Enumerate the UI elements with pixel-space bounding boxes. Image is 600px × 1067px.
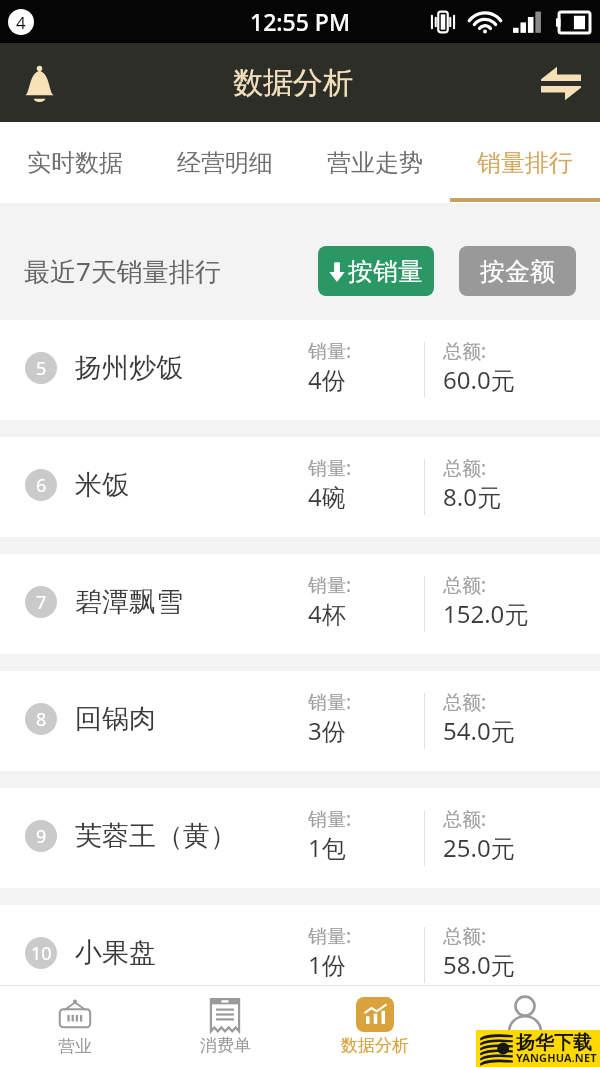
button[interactable]: 消费单	[150, 986, 300, 1067]
button[interactable]: 6	[0, 437, 600, 537]
button[interactable]: 销量排行	[450, 122, 600, 203]
button[interactable]: 实时数据	[0, 122, 150, 203]
staticText: 6	[36, 473, 47, 498]
staticText: 扬华下载	[516, 1031, 592, 1055]
staticText: 1份	[308, 948, 346, 981]
button[interactable]: 按销量	[318, 246, 434, 296]
staticText: 数据分析	[341, 1035, 409, 1056]
staticText: 4碗	[308, 480, 346, 513]
button[interactable]: 7	[0, 554, 600, 654]
staticText: 8	[36, 707, 47, 732]
staticText: 9	[36, 824, 47, 849]
staticText: 总额:	[443, 689, 487, 715]
staticText: 4份	[308, 363, 346, 396]
staticText: 按金额	[480, 256, 555, 287]
button[interactable]: 营业走势	[300, 122, 450, 203]
staticText: 销量:	[308, 338, 352, 364]
staticText: 经营明细	[177, 148, 273, 178]
staticText: 25.0元	[443, 831, 515, 864]
button[interactable]: 8	[0, 671, 600, 771]
staticText: 54.0元	[443, 714, 515, 747]
staticText: 总额:	[443, 455, 487, 481]
staticText: 销量:	[308, 806, 352, 832]
staticText: 58.0元	[443, 948, 515, 981]
staticText: 按销量	[348, 256, 423, 287]
staticText: 数据分析	[233, 64, 353, 102]
staticText: 1包	[308, 831, 346, 864]
staticText: 4杯	[308, 597, 346, 630]
staticText: 销量:	[308, 455, 352, 481]
staticText: 总额:	[443, 923, 487, 949]
staticText: 152.0元	[443, 597, 529, 630]
staticText: 销量排行	[477, 148, 573, 178]
staticText: 60.0元	[443, 363, 515, 396]
staticText: 扬州炒饭	[75, 351, 183, 385]
staticText: 营业走势	[327, 148, 423, 178]
button[interactable]: 营业	[0, 986, 150, 1067]
staticText: 营业	[58, 1036, 92, 1057]
staticText: 回锅肉	[75, 702, 156, 736]
staticText: 12:55 PM	[250, 6, 351, 37]
staticText: 芙蓉王（黄）	[75, 819, 237, 853]
staticText: 8.0元	[443, 480, 501, 513]
button[interactable]: 9	[0, 788, 600, 888]
staticText: 销量:	[308, 572, 352, 598]
staticText: 4	[16, 11, 26, 34]
staticText: 最近7天销量排行	[24, 253, 221, 289]
button[interactable]: 按金额	[459, 246, 576, 296]
staticText: 小果盘	[75, 936, 156, 970]
staticText: 10	[31, 941, 52, 966]
staticText: 米饭	[75, 468, 129, 502]
staticText: 销量:	[308, 689, 352, 715]
staticText: YANGHUA.NET	[516, 1050, 597, 1065]
button[interactable]: 经营明细	[150, 122, 300, 203]
staticText: 消费单	[200, 1035, 251, 1056]
staticText: 碧潭飘雪	[75, 585, 183, 619]
button[interactable]: 5	[0, 320, 600, 420]
button[interactable]: 数据分析	[300, 986, 450, 1067]
staticText: 总额:	[443, 338, 487, 364]
staticText: 5	[36, 356, 47, 381]
button[interactable]: 10	[0, 905, 600, 985]
staticText: 实时数据	[27, 148, 123, 178]
staticText: 销量:	[308, 923, 352, 949]
staticText: 我的	[508, 1035, 542, 1056]
staticText: 总额:	[443, 806, 487, 832]
button[interactable]: Switch account	[530, 52, 592, 114]
staticText: 总额:	[443, 572, 487, 598]
button[interactable]: 我的	[450, 986, 600, 1067]
button[interactable]: Notifications	[8, 52, 70, 114]
staticText: 7	[36, 590, 47, 615]
staticText: 3份	[308, 714, 346, 747]
